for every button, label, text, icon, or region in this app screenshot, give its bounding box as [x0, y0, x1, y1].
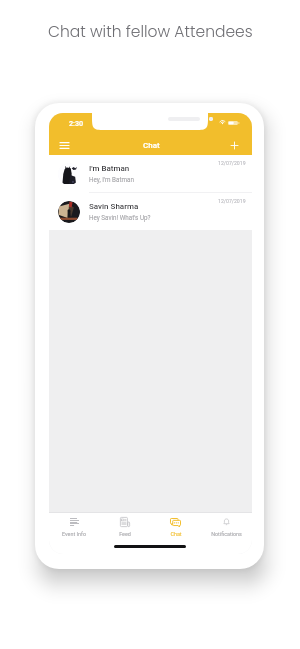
staticText: Notifications: [211, 531, 242, 537]
staticText: Hey Savin! What's Up?: [89, 214, 151, 221]
staticText: Event Info: [62, 531, 86, 537]
staticText: Chat: [143, 141, 160, 150]
staticText: Feed: [119, 531, 131, 537]
staticText: I'm Batman: [89, 164, 130, 173]
button[interactable]: Chat: [150, 512, 201, 542]
staticText: Chat with fellow Attendees: [48, 21, 253, 43]
button[interactable]: Event Info: [49, 512, 99, 542]
staticText: 12/07/2019: [218, 198, 246, 204]
button[interactable]: Open navigation menu: [53, 136, 76, 154]
button[interactable]: Feed: [99, 512, 150, 542]
staticText: Hey, I'm Batman: [89, 176, 134, 183]
button[interactable]: Savin Sharma: [49, 193, 252, 230]
staticText: Savin Sharma: [89, 202, 139, 211]
staticText: 12/07/2019: [218, 160, 246, 166]
staticText: 2:30: [69, 119, 84, 127]
button[interactable]: Notifications: [201, 512, 252, 542]
staticText: Chat: [170, 531, 182, 537]
button[interactable]: I'm Batman: [49, 155, 252, 192]
button[interactable]: New chat: [223, 136, 246, 154]
